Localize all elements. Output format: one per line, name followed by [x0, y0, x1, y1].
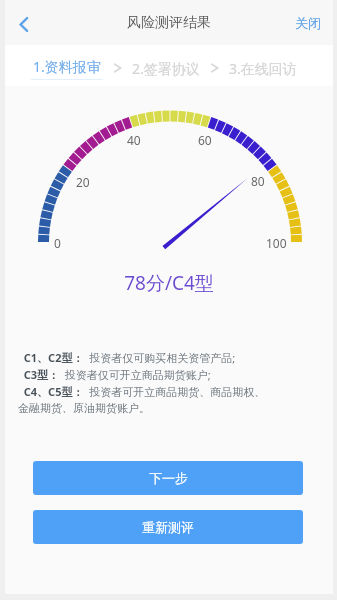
- button[interactable]: 3.在线回访: [229, 59, 297, 78]
- staticText: C4、C5型： 投资者可开立商品期货、商品期权、: [18, 384, 266, 399]
- staticText: 1.资料报审: [33, 57, 101, 76]
- staticText: 80: [251, 173, 265, 189]
- staticText: C3型： 投资者仅可开立商品期货账户;: [18, 367, 211, 382]
- button[interactable]: 2.签署协议: [132, 59, 200, 78]
- staticText: 风险测评结果: [127, 14, 211, 32]
- button[interactable]: Back: [5, 0, 47, 45]
- button[interactable]: 1.资料报审: [31, 57, 103, 80]
- button[interactable]: 重新测评: [33, 510, 303, 544]
- staticText: 100: [266, 235, 287, 251]
- staticText: 78分/C4型: [5, 270, 333, 296]
- button[interactable]: 关闭: [293, 15, 323, 31]
- staticText: 关闭: [295, 15, 321, 31]
- staticText: C1、C2型： 投资者仅可购买相关资管产品;: [18, 350, 236, 365]
- staticText: 20: [76, 174, 90, 190]
- staticText: 重新测评: [142, 519, 194, 535]
- button[interactable]: 下一步: [33, 461, 303, 495]
- staticText: 金融期货、原油期货账户。: [18, 401, 150, 415]
- staticText: 60: [198, 132, 212, 148]
- staticText: 下一步: [149, 470, 188, 486]
- staticText: 0: [54, 235, 61, 251]
- staticText: 40: [127, 132, 141, 148]
